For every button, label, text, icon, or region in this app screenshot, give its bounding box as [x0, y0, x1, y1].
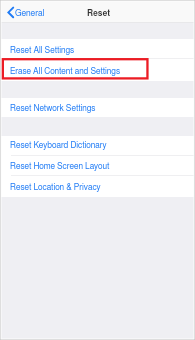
staticText: Reset Keyboard Dictionary [10, 141, 107, 149]
button[interactable]: Back to General [7, 2, 45, 22]
button[interactable]: Reset Keyboard Dictionary [1, 136, 194, 156]
staticText: Erase All Content and Settings [10, 67, 121, 75]
button[interactable]: Erase All Content and Settings [1, 59, 194, 81]
staticText: Reset [87, 9, 111, 17]
button[interactable]: Reset All Settings [1, 39, 194, 59]
staticText: Reset Location & Privacy [10, 183, 101, 191]
button[interactable]: Reset Home Screen Layout [1, 156, 194, 176]
staticText: General [15, 9, 45, 18]
button[interactable]: Reset Network Settings [1, 98, 194, 117]
staticText: Reset All Settings [10, 46, 75, 54]
button[interactable]: Reset Location & Privacy [1, 176, 194, 197]
staticText: Reset Network Settings [10, 104, 96, 112]
staticText: Reset Home Screen Layout [10, 162, 110, 170]
